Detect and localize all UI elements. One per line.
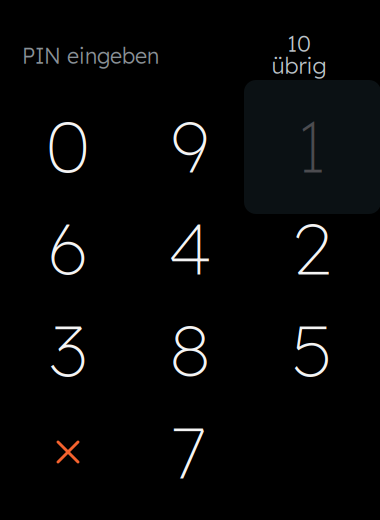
staticText: 4 [168,204,212,292]
button[interactable]: 5 [251,299,373,401]
button[interactable]: 2 [251,197,373,299]
staticText: 1 [298,102,326,190]
staticText: 9 [170,102,209,190]
button[interactable]: 9 [129,95,251,197]
staticText: 2 [292,204,331,292]
staticText: 6 [47,204,89,292]
staticText: 5 [292,306,332,394]
staticText: 10 [287,29,311,57]
button[interactable]: 6 [7,197,129,299]
staticText: PIN eingeben [22,42,159,69]
button[interactable]: 4 [129,197,251,299]
button[interactable]: 3 [7,299,129,401]
button[interactable]: 7 [129,401,251,503]
button[interactable]: Delete [7,401,129,503]
staticText: 3 [49,306,86,394]
staticText: 7 [173,408,207,496]
button[interactable]: 1 [251,95,373,197]
staticText: 0 [46,102,90,190]
staticText: übrig [271,51,326,79]
button[interactable]: 8 [129,299,251,401]
button[interactable]: 0 [7,95,129,197]
staticText: 8 [169,306,210,394]
